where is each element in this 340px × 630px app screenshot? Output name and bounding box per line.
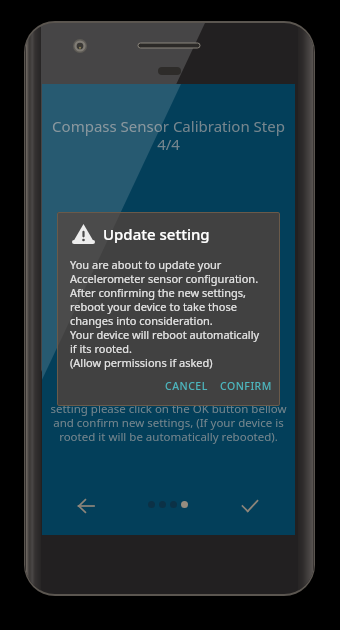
staticText: Update setting xyxy=(103,224,210,244)
button[interactable]: Back xyxy=(63,483,109,529)
staticText: Compass Sensor Calibration Step 4/4 xyxy=(42,116,295,155)
button[interactable]: Confirm xyxy=(227,483,273,529)
staticText: CANCEL xyxy=(165,379,208,393)
staticText: CONFIRM xyxy=(220,379,272,393)
staticText: Compass calibration setting please click… xyxy=(42,387,295,445)
button[interactable]: CONFIRM xyxy=(214,373,276,399)
button[interactable]: CANCEL xyxy=(159,373,214,399)
staticText: You are about to update your Acceleromet… xyxy=(70,257,260,370)
